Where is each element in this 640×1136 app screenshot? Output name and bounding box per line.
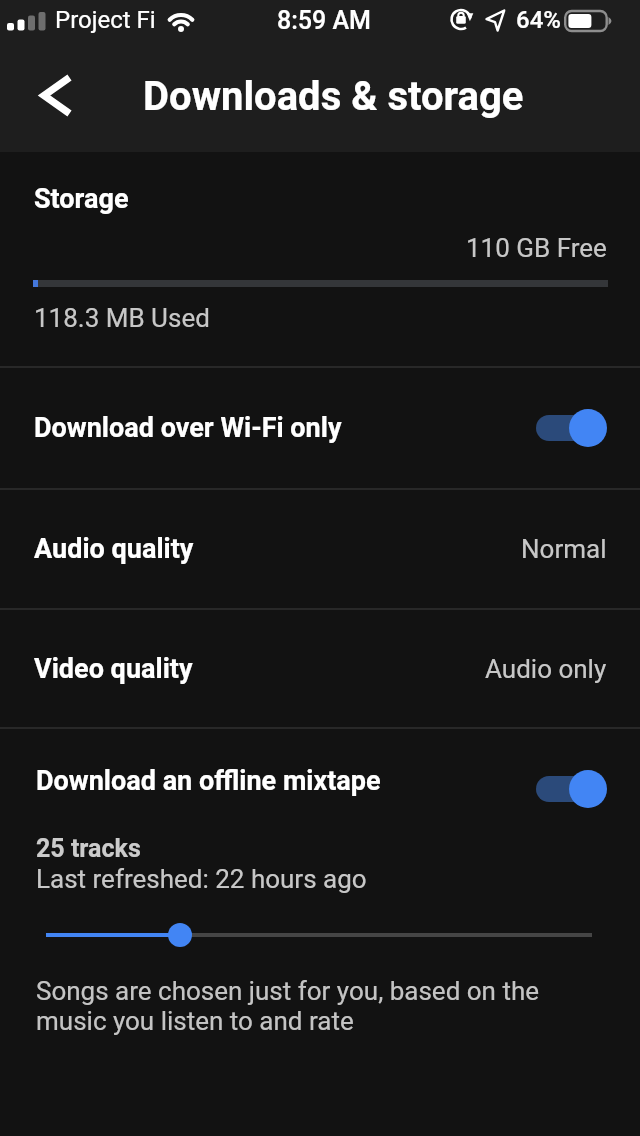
staticText: 8:59 AM	[277, 6, 372, 35]
button[interactable]	[536, 408, 607, 448]
staticText: Audio only	[485, 654, 607, 684]
staticText: Normal	[521, 534, 607, 564]
staticText: Project Fi	[55, 6, 156, 34]
button[interactable]	[536, 769, 607, 809]
staticText: 110 GB Free	[466, 233, 607, 263]
button[interactable]: Audio quality	[0, 490, 640, 608]
staticText: Songs are chosen just for you, based on …	[36, 976, 540, 1006]
button[interactable]: Download an offline mixtape	[0, 729, 640, 831]
button[interactable]	[34, 913, 606, 957]
staticText: Last refreshed: 22 hours ago	[36, 864, 367, 894]
button[interactable]: Download over Wi-Fi only	[0, 368, 640, 488]
staticText: music you listen to and rate	[36, 1006, 354, 1036]
staticText: Video quality	[34, 653, 193, 685]
button[interactable]: Video quality	[0, 610, 640, 727]
staticText: 25 tracks	[36, 834, 141, 863]
staticText: Storage	[34, 183, 129, 215]
staticText: Audio quality	[34, 533, 194, 565]
staticText: 118.3 MB Used	[34, 303, 210, 333]
button[interactable]	[30, 68, 86, 124]
staticText: 64%	[516, 6, 561, 34]
staticText: Download an offline mixtape	[36, 765, 381, 797]
staticText: Download over Wi-Fi only	[34, 412, 342, 444]
staticText: Downloads & storage	[143, 73, 524, 120]
